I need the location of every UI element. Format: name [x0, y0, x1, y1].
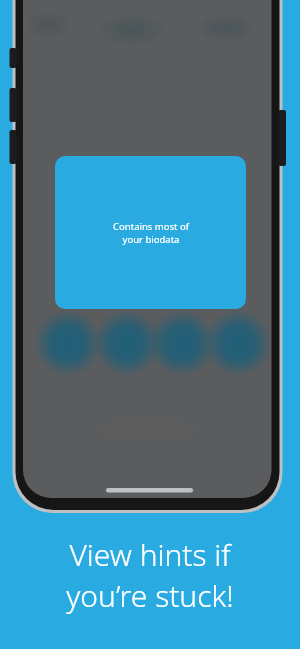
button[interactable]: Hint card: [55, 156, 246, 309]
staticText: View hints if you’re stuck!: [12, 534, 288, 616]
staticText: Contains most of your biodata: [113, 220, 189, 246]
